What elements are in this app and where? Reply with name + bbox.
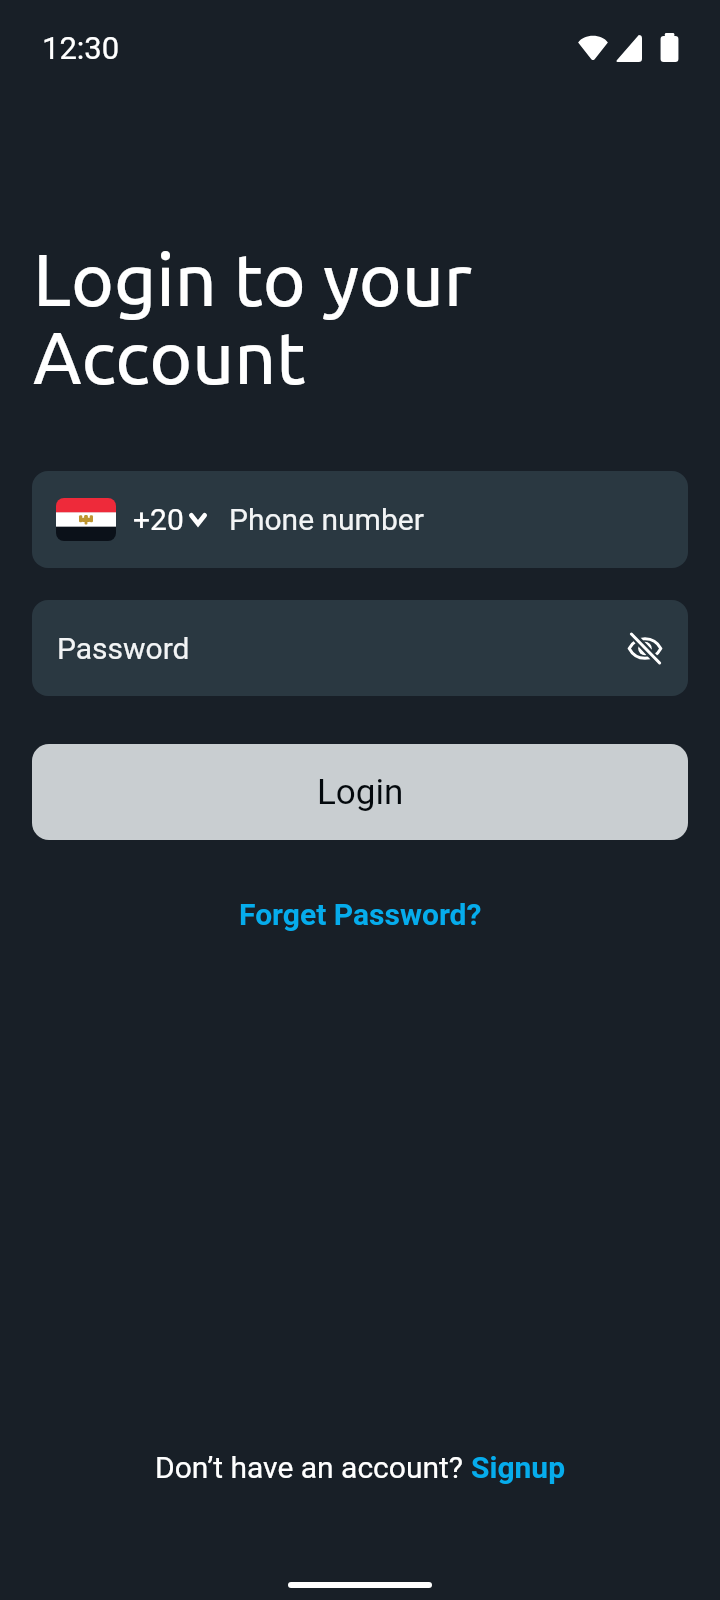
staticText: Forget Password? <box>239 897 482 932</box>
button[interactable]: Show password <box>621 624 669 672</box>
staticText: Login <box>317 772 404 813</box>
staticText: Phone number <box>229 502 424 537</box>
staticText: Password <box>57 631 190 666</box>
staticText: Signup <box>471 1450 566 1485</box>
button[interactable]: Signup <box>471 1450 566 1485</box>
button[interactable]: Login <box>32 744 688 840</box>
staticText: +20 <box>133 502 184 537</box>
staticText: Login to your Account <box>33 238 473 398</box>
staticText: 12:30 <box>42 30 120 66</box>
staticText: Don’t have an account? <box>155 1450 471 1485</box>
button[interactable]: +20 <box>32 471 688 568</box>
button[interactable]: Forget Password? <box>223 891 498 938</box>
button[interactable]: Password <box>32 600 688 696</box>
